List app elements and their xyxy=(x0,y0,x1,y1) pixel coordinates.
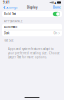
staticText: your preferred reading size. Choose xyxy=(8,51,60,55)
staticText: Dark xyxy=(4,31,9,35)
staticText: 9:41 xyxy=(3,1,10,4)
staticText: On xyxy=(54,31,58,35)
staticText: Automatic xyxy=(4,25,17,29)
staticText: Text Size xyxy=(4,39,14,42)
staticText: Done xyxy=(53,6,61,9)
staticText: APPEARANCE xyxy=(4,19,22,23)
button[interactable]: Settings xyxy=(1,5,18,10)
staticText: ▲ xyxy=(54,1,56,4)
button[interactable]: Dark xyxy=(2,30,62,36)
button[interactable]: Automatic xyxy=(2,24,62,30)
staticText: Apps and system features adapt to xyxy=(8,47,54,51)
staticText: Bold Text xyxy=(4,12,16,16)
staticText: Display xyxy=(27,6,37,9)
button[interactable]: Bold Text xyxy=(2,11,62,17)
button[interactable]: Done xyxy=(51,5,62,10)
staticText: Settings xyxy=(6,6,17,9)
staticText: Larger Text for more options. xyxy=(8,55,47,59)
